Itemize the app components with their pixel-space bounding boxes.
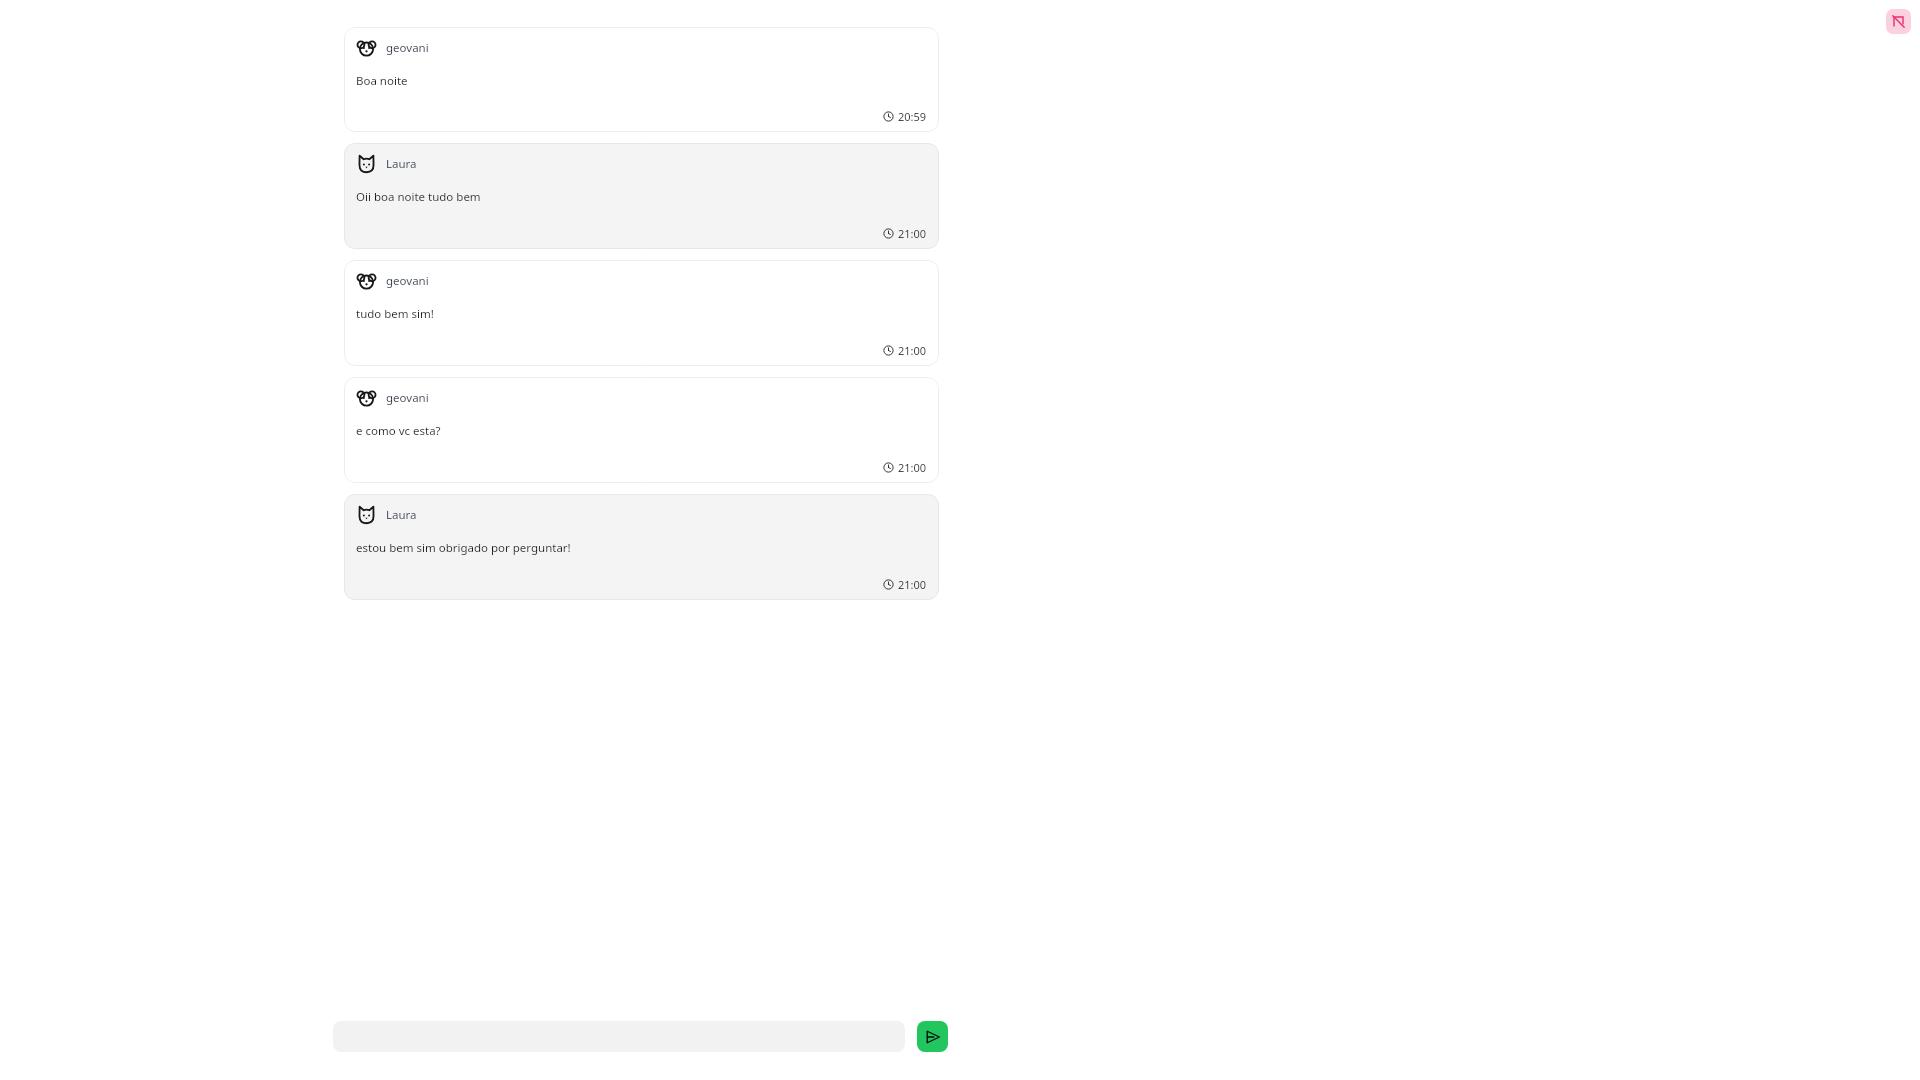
- button[interactable]: Send: [917, 1021, 948, 1052]
- staticText: Boa noite: [356, 73, 408, 89]
- staticText: 21:00: [898, 226, 927, 241]
- staticText: geovani: [386, 390, 429, 406]
- staticText: Laura: [386, 156, 417, 172]
- staticText: e como vc esta?: [356, 423, 441, 439]
- staticText: 21:00: [898, 343, 927, 358]
- button[interactable]: Unflag conversation: [1886, 9, 1911, 34]
- staticText: tudo bem sim!: [356, 306, 434, 322]
- button[interactable]: Laura: [344, 143, 939, 249]
- button[interactable]: Laura: [344, 494, 939, 600]
- staticText: 21:00: [898, 460, 927, 475]
- button[interactable]: geovani: [344, 377, 939, 483]
- staticText: Laura: [386, 507, 417, 523]
- button[interactable]: geovani: [344, 260, 939, 366]
- staticText: 20:59: [898, 109, 927, 124]
- staticText: geovani: [386, 273, 429, 289]
- staticText: Oii boa noite tudo bem: [356, 189, 481, 205]
- staticText: geovani: [386, 40, 429, 56]
- staticText: estou bem sim obrigado por perguntar!: [356, 540, 571, 556]
- staticText: 21:00: [898, 577, 927, 592]
- button[interactable]: geovani: [344, 27, 939, 132]
